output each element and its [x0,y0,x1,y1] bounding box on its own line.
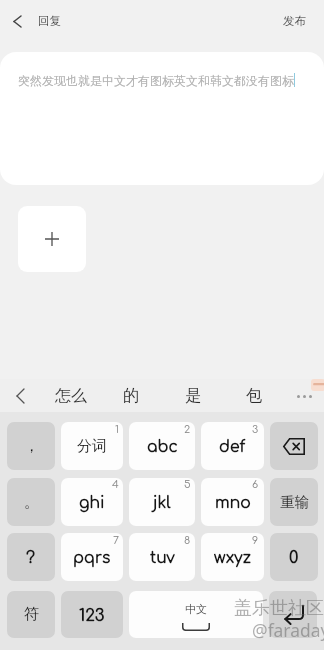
staticText: jkl [153,494,171,511]
button[interactable]: wxyz [201,533,264,581]
staticText: mno [215,494,251,511]
button[interactable]: mno [201,478,264,526]
button[interactable]: 。 [7,478,55,526]
staticText: def [219,438,246,455]
button[interactable]: 包 [226,379,282,412]
button[interactable]: def [201,422,264,470]
button[interactable]: 是 [165,379,221,412]
button[interactable]: tuv [129,533,195,581]
button[interactable]: 重输 [270,478,318,526]
button[interactable]: 0 [270,533,318,581]
staticText: ghi [79,494,105,511]
button[interactable]: jkl [129,478,195,526]
button[interactable]: Enter [269,591,317,638]
staticText: 包 [246,386,262,406]
staticText: ? [26,548,36,566]
button[interactable]: 符 [7,591,55,638]
staticText: 123 [79,606,105,624]
staticText: 4 [112,479,119,491]
button[interactable]: ? [7,533,55,581]
button[interactable]: ， [7,422,55,470]
staticText: pqrs [73,549,111,566]
button[interactable]: More [288,379,324,412]
staticText: ， [24,437,39,456]
staticText: wxyz [214,549,252,566]
button[interactable]: Previous page [0,379,40,412]
staticText: 分词 [77,437,107,456]
staticText: 是 [185,386,201,406]
staticText: 5 [184,479,191,491]
staticText: 2 [184,424,191,436]
button[interactable]: Add photo [18,206,86,272]
staticText: 6 [252,479,259,491]
staticText: @faraday [252,618,324,642]
staticText: 中文 [185,602,207,616]
staticText: 突然发现也就是中文才有图标英文和韩文都没有图标 [18,73,294,88]
button[interactable]: Backspace [270,422,318,470]
staticText: 的 [123,386,139,406]
other: Backspace [283,438,305,455]
staticText: 0 [289,548,299,566]
staticText: abc [147,438,178,455]
staticText: 符 [24,605,39,624]
other: Back [14,16,21,27]
staticText: 3 [252,424,259,436]
staticText: 1 [115,424,119,436]
button[interactable]: 发布 [265,6,324,36]
button[interactable]: pqrs [61,533,123,581]
staticText: 9 [252,535,259,547]
button[interactable]: 中文 [129,591,263,638]
staticText: 回复 [38,14,61,28]
button[interactable]: abc [129,422,195,470]
button[interactable]: 突然发现也就是中文才有图标英文和韩文都没有图标 [0,52,324,185]
button[interactable]: ghi [61,478,123,526]
staticText: 8 [184,535,191,547]
staticText: 重输 [280,493,309,511]
button[interactable]: 的 [103,379,159,412]
staticText: 。 [24,493,39,512]
button[interactable]: 怎么 [43,379,99,412]
staticText: 怎么 [55,386,87,406]
staticText: 7 [113,535,119,547]
staticText: 盖乐世社区 [234,597,324,620]
other: Enter [283,611,304,624]
button[interactable]: Back [0,6,75,36]
button[interactable]: 123 [61,591,123,638]
staticText: tuv [150,549,175,566]
button[interactable]: 分词 [61,422,123,470]
staticText: 发布 [283,14,306,28]
